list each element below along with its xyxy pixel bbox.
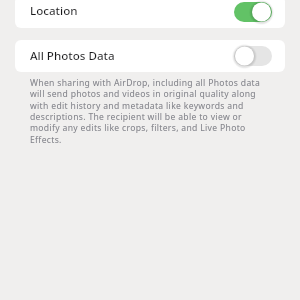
button[interactable]: All Photos Data	[15, 40, 285, 72]
staticText: descriptions. The recipient will be able…	[30, 111, 242, 123]
staticText: Location	[30, 3, 78, 19]
staticText: with edit history and metadata like keyw…	[30, 100, 244, 112]
staticText: All Photos Data	[30, 48, 115, 64]
button[interactable]: All Photos Data, off	[234, 46, 272, 66]
button[interactable]: Location, on	[234, 2, 272, 22]
staticText: modify any edits like crops, filters, an…	[30, 122, 246, 134]
staticText: Effects.	[30, 134, 62, 146]
button[interactable]: Location	[15, 0, 285, 28]
staticText: When sharing with AirDrop, including all…	[30, 77, 261, 89]
staticText: will send photos and videos in original …	[30, 88, 256, 100]
